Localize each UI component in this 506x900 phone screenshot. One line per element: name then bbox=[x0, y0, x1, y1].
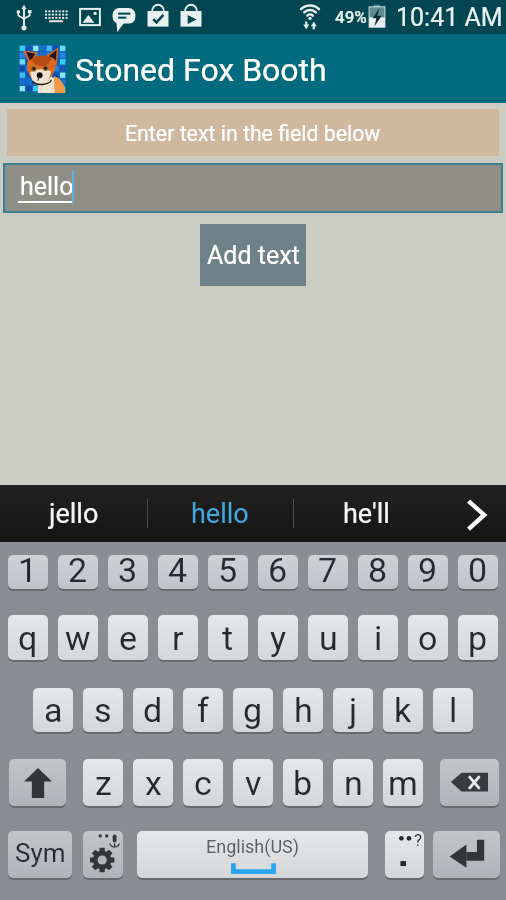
button[interactable]: Settings and voice input bbox=[83, 831, 123, 878]
button[interactable]: f bbox=[183, 688, 223, 732]
staticText: 4 bbox=[168, 555, 188, 584]
staticText: n bbox=[344, 763, 363, 803]
button[interactable]: 6 bbox=[258, 555, 298, 589]
staticText: o bbox=[418, 618, 438, 658]
button[interactable]: x bbox=[133, 759, 173, 806]
button[interactable]: 1 bbox=[8, 555, 48, 589]
staticText: q bbox=[18, 618, 38, 658]
staticText: f bbox=[197, 690, 209, 730]
staticText: p bbox=[468, 618, 488, 658]
staticText: b bbox=[293, 763, 313, 803]
button[interactable]: y bbox=[258, 615, 298, 660]
staticText: hello bbox=[191, 498, 249, 530]
button[interactable]: c bbox=[183, 759, 223, 806]
staticText: t bbox=[222, 618, 234, 658]
button[interactable]: k bbox=[383, 688, 423, 732]
button[interactable]: q bbox=[8, 615, 48, 660]
button[interactable]: i bbox=[358, 615, 398, 660]
button[interactable]: b bbox=[283, 759, 323, 806]
button[interactable]: h bbox=[283, 688, 323, 732]
staticText: hello bbox=[20, 172, 74, 201]
button[interactable]: Stoned Fox Booth bbox=[0, 34, 506, 103]
button[interactable]: hello bbox=[147, 485, 293, 542]
button[interactable]: r bbox=[158, 615, 198, 660]
staticText: a bbox=[44, 690, 63, 730]
staticText: 49% bbox=[335, 7, 367, 27]
button[interactable]: Sym bbox=[8, 831, 72, 878]
staticText: k bbox=[394, 690, 412, 730]
staticText: l bbox=[449, 690, 458, 730]
staticText: 8 bbox=[368, 555, 388, 584]
button[interactable]: e bbox=[108, 615, 148, 660]
staticText: English(US) bbox=[206, 836, 300, 857]
button[interactable]: 5 bbox=[208, 555, 248, 589]
button[interactable]: 0 bbox=[458, 555, 498, 589]
button[interactable]: 3 bbox=[108, 555, 148, 589]
button[interactable]: w bbox=[58, 615, 98, 660]
button[interactable]: 4 bbox=[158, 555, 198, 589]
button[interactable]: t bbox=[208, 615, 248, 660]
staticText: Stoned Fox Booth bbox=[75, 51, 327, 89]
staticText: 7 bbox=[318, 555, 338, 584]
button[interactable]: Shift bbox=[9, 759, 66, 806]
staticText: m bbox=[388, 763, 418, 803]
button[interactable]: j bbox=[333, 688, 373, 732]
staticText: 2 bbox=[68, 555, 88, 584]
staticText: 6 bbox=[268, 555, 288, 584]
button[interactable]: g bbox=[233, 688, 273, 732]
staticText: x bbox=[145, 763, 162, 803]
staticText: c bbox=[194, 763, 212, 803]
button[interactable]: u bbox=[308, 615, 348, 660]
staticText: Enter text in the field below bbox=[125, 121, 381, 146]
staticText: 1 bbox=[18, 555, 38, 584]
button[interactable]: 8 bbox=[358, 555, 398, 589]
staticText: y bbox=[270, 618, 287, 658]
button[interactable]: o bbox=[408, 615, 448, 660]
staticText: r bbox=[172, 618, 184, 658]
staticText: 5 bbox=[218, 555, 238, 584]
button[interactable]: z bbox=[83, 759, 123, 806]
button[interactable]: n bbox=[333, 759, 373, 806]
button[interactable]: Backspace bbox=[440, 759, 499, 806]
staticText: g bbox=[243, 690, 263, 730]
staticText: h bbox=[294, 690, 313, 730]
button[interactable]: p bbox=[458, 615, 498, 660]
staticText: e bbox=[119, 618, 138, 658]
button[interactable]: Enter bbox=[433, 831, 500, 878]
button[interactable]: l bbox=[433, 688, 473, 732]
staticText: 9 bbox=[418, 555, 438, 584]
staticText: 3 bbox=[118, 555, 138, 584]
button[interactable]: 2 bbox=[58, 555, 98, 589]
button[interactable]: m bbox=[383, 759, 423, 806]
button[interactable]: v bbox=[233, 759, 273, 806]
staticText: z bbox=[95, 763, 112, 803]
button[interactable]: he'll bbox=[293, 485, 440, 542]
staticText: v bbox=[245, 763, 262, 803]
button[interactable]: Add text bbox=[200, 224, 306, 286]
staticText: Add text bbox=[207, 241, 300, 270]
staticText: u bbox=[319, 618, 338, 658]
staticText: d bbox=[143, 690, 163, 730]
button[interactable]: 7 bbox=[308, 555, 348, 589]
staticText: w bbox=[65, 618, 91, 658]
button[interactable]: 9 bbox=[408, 555, 448, 589]
button[interactable]: a bbox=[33, 688, 73, 732]
staticText: he'll bbox=[343, 498, 390, 530]
button[interactable]: ? bbox=[385, 831, 424, 878]
staticText: i bbox=[374, 618, 383, 658]
staticText: Sym bbox=[15, 838, 66, 868]
staticText: 10:41 AM bbox=[396, 3, 503, 32]
staticText: jello bbox=[49, 498, 99, 530]
button[interactable]: English(US) bbox=[137, 831, 368, 878]
button[interactable]: More suggestions bbox=[440, 485, 506, 542]
staticText: j bbox=[349, 690, 358, 730]
button[interactable]: d bbox=[133, 688, 173, 732]
button[interactable]: jello bbox=[0, 485, 147, 542]
staticText: s bbox=[94, 690, 112, 730]
staticText: 0 bbox=[468, 555, 488, 584]
staticText: ? bbox=[414, 831, 423, 850]
button[interactable]: s bbox=[83, 688, 123, 732]
